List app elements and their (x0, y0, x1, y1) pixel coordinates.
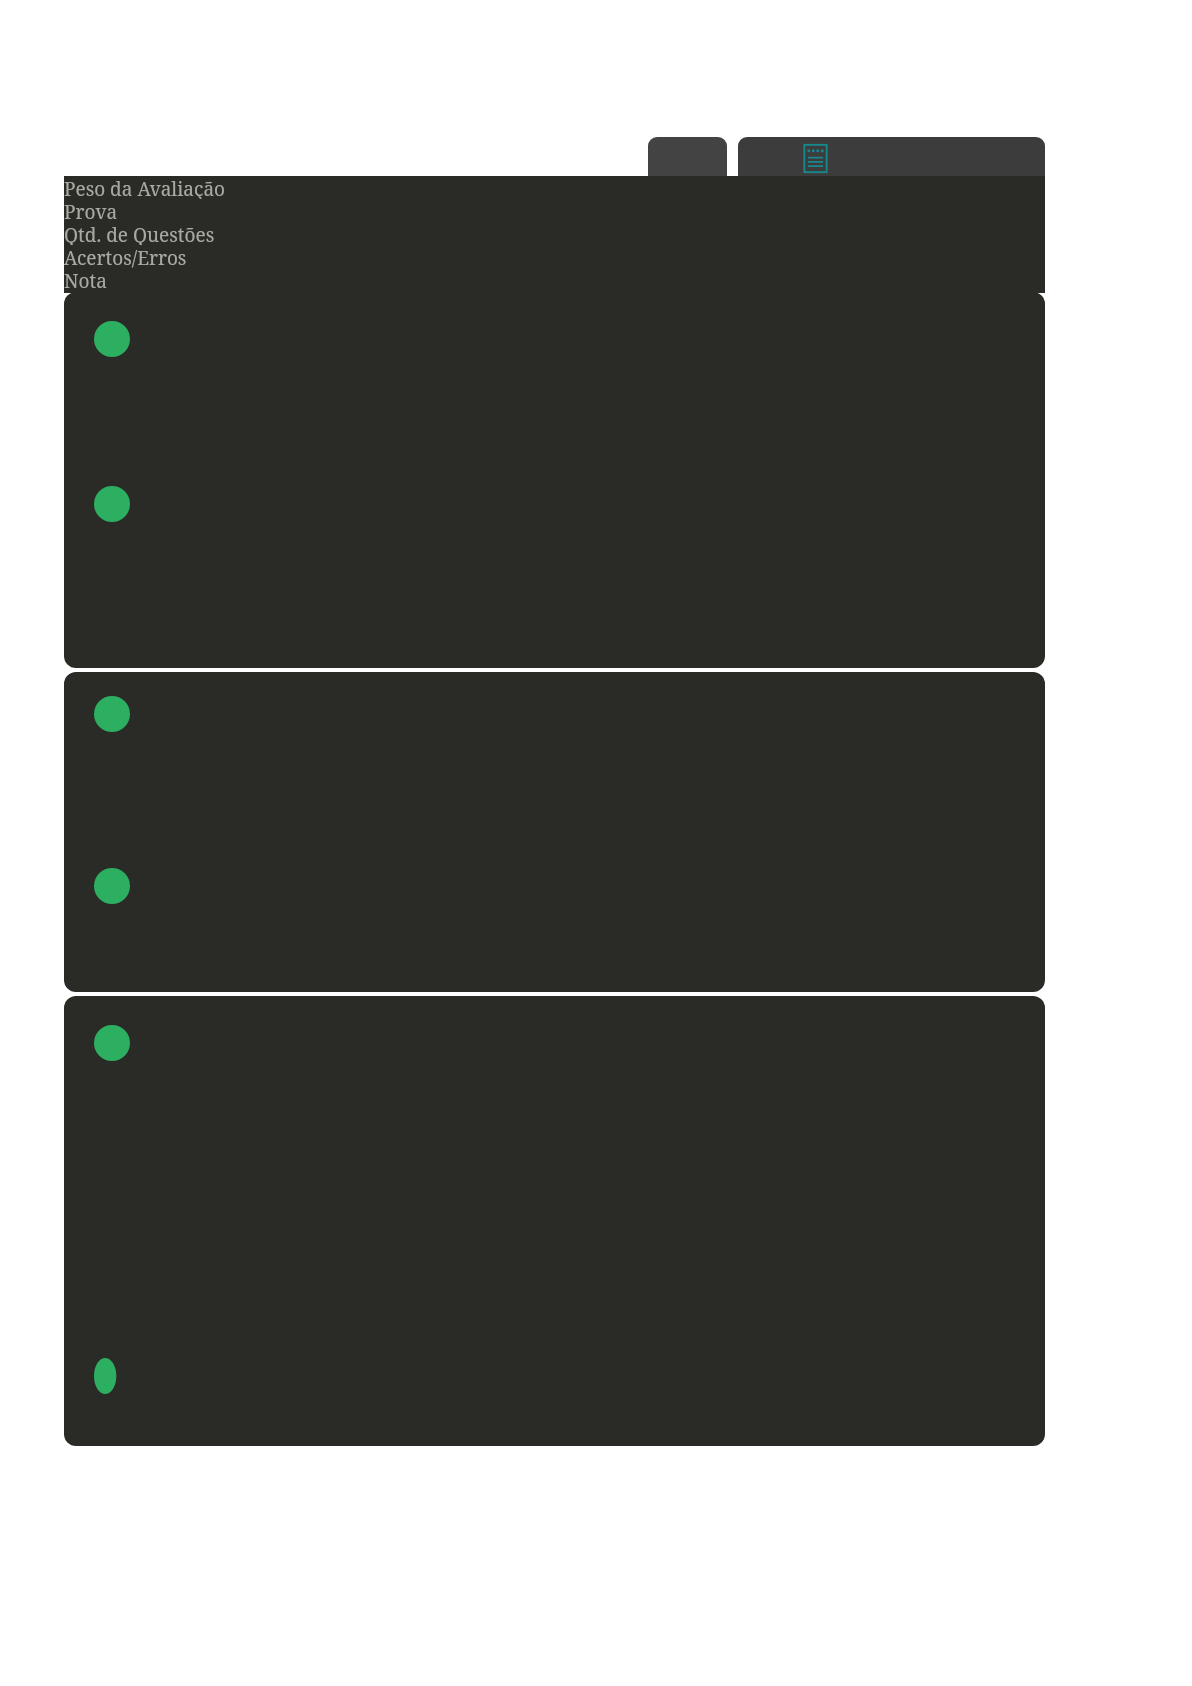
button[interactable] (64, 672, 1045, 992)
staticText: Nota (64, 268, 107, 291)
staticText: Peso da Avaliação (64, 176, 226, 199)
button[interactable]: Aba (648, 137, 727, 179)
staticText: Qtd. de Questões (64, 222, 215, 245)
staticText: Acertos/Erros (64, 245, 187, 268)
staticText: Prova (64, 199, 118, 222)
button[interactable]: Notas da avaliacao (738, 137, 1045, 179)
button[interactable] (64, 996, 1045, 1446)
button[interactable] (64, 292, 1045, 668)
